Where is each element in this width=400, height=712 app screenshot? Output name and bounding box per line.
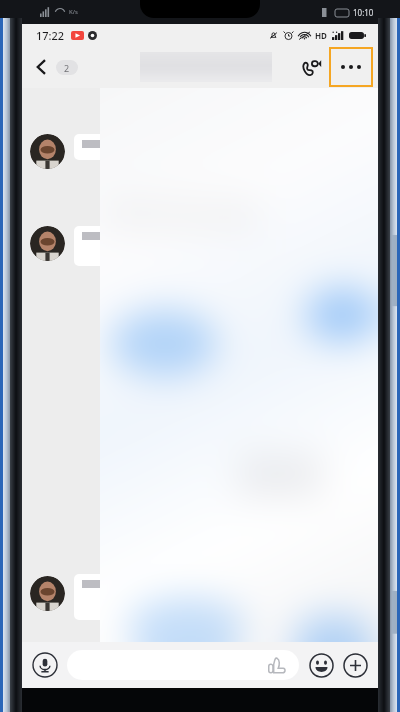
button[interactable]: Contact avatar [30,226,65,261]
button[interactable]: H [358,262,372,283]
staticText: 2 [64,62,70,74]
button[interactable]: Voice message [31,651,59,679]
button[interactable]: Back [30,54,84,80]
button[interactable]: Thumbs up [67,650,299,680]
button[interactable]: Thumbs up [267,655,287,675]
button[interactable]: Contact avatar [30,576,65,611]
button[interactable]: More options [330,48,372,86]
staticText: 10:10 [353,7,374,18]
button[interactable]: Video call [294,50,328,84]
staticText: I [363,287,367,301]
staticText: H [361,266,369,280]
button[interactable] [74,226,224,266]
staticText: 17:22 [36,28,65,43]
button[interactable]: More [342,652,369,679]
staticText: W [139,343,156,366]
button[interactable]: Contact avatar [30,134,65,169]
staticText: K/s [69,8,78,16]
staticText: HD [315,30,327,41]
button[interactable]: I [358,283,372,304]
button[interactable]: W [110,324,290,402]
button[interactable]: J [358,304,372,325]
button[interactable] [74,574,234,620]
button[interactable]: Emoji [308,652,335,679]
button[interactable] [74,134,192,160]
